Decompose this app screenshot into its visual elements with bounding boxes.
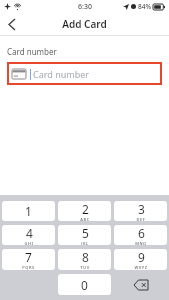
staticText: 8 xyxy=(82,249,89,265)
button[interactable]: 8 xyxy=(58,249,111,270)
button[interactable]: 9 xyxy=(114,249,167,270)
staticText: 84% xyxy=(138,2,151,11)
button[interactable]: Card number xyxy=(7,62,162,85)
staticText: MNO xyxy=(135,241,147,245)
button[interactable]: 5 xyxy=(58,225,111,245)
button[interactable]: 6 xyxy=(114,225,167,245)
button[interactable]: Back xyxy=(0,13,24,35)
staticText: 6 xyxy=(138,225,145,241)
staticText: TUV xyxy=(80,265,90,270)
staticText: 7 xyxy=(25,249,32,265)
staticText: 6:30 xyxy=(78,2,92,12)
staticText: Card number xyxy=(33,68,90,80)
button[interactable]: 0 xyxy=(58,274,111,295)
button[interactable]: 7 xyxy=(2,249,55,270)
staticText: 2 xyxy=(82,201,89,217)
staticText: 0 xyxy=(81,277,88,293)
button[interactable]: 2 xyxy=(58,201,111,221)
staticText: WXYZ xyxy=(134,265,148,270)
staticText: 5 xyxy=(82,225,89,241)
button[interactable]: 1 xyxy=(2,201,55,221)
staticText: Add Card xyxy=(62,17,107,31)
button[interactable]: 3 xyxy=(114,201,167,221)
button[interactable]: 4 xyxy=(2,225,55,245)
staticText: ABC xyxy=(80,217,90,221)
staticText: GHI xyxy=(24,241,34,245)
staticText: JKL xyxy=(81,241,89,245)
staticText: 3 xyxy=(138,201,145,217)
staticText: DEF xyxy=(136,217,146,221)
button[interactable]: Delete xyxy=(114,274,167,295)
staticText: Card number xyxy=(7,46,57,57)
staticText: 1 xyxy=(25,203,32,219)
staticText: PQRS xyxy=(22,265,35,270)
staticText: 4 xyxy=(26,225,33,241)
staticText: 9 xyxy=(138,249,145,265)
